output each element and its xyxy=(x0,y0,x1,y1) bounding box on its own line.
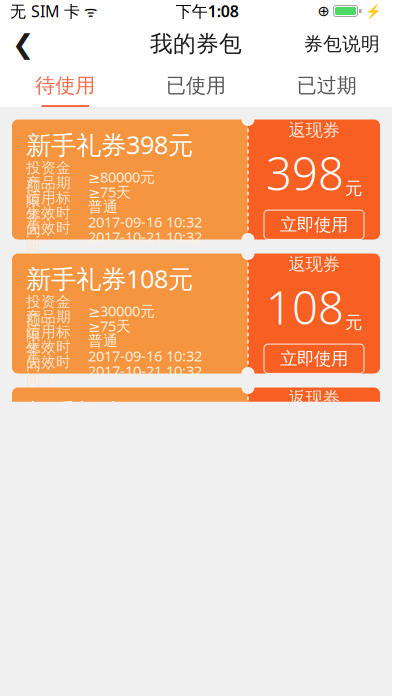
staticText: 2017-09-16 10:32 xyxy=(88,346,202,366)
staticText: 新手礼券398元 xyxy=(26,128,193,161)
staticText: 我的券包 xyxy=(150,30,242,58)
staticText: 普通 xyxy=(88,198,118,216)
button[interactable]: Back xyxy=(0,22,46,66)
staticText: 108 xyxy=(266,277,344,337)
staticText: 投资金额： xyxy=(26,159,71,195)
staticText: 立即使用 xyxy=(280,348,348,369)
staticText: 返现券 xyxy=(288,388,339,409)
staticText: 生效时间： xyxy=(26,204,71,240)
staticText: ≥30000元 xyxy=(88,301,155,321)
staticText: 券包说明 xyxy=(304,32,380,55)
staticText: 产品期限： xyxy=(26,308,71,344)
staticText: ⊕ xyxy=(317,3,329,19)
staticText: ≥80000元 xyxy=(88,167,155,187)
staticText: 失效时间： xyxy=(26,219,71,255)
staticText: 投资金额： xyxy=(26,293,71,329)
staticText: 新手礼券88元 xyxy=(26,396,179,429)
staticText: ⚡ xyxy=(365,3,382,19)
staticText: ❮ xyxy=(12,29,34,59)
button[interactable]: 已使用 xyxy=(131,66,261,107)
staticText: 下午1:08 xyxy=(176,0,239,22)
staticText: 失效时间： xyxy=(26,353,71,389)
staticText: 2017-09-16 10:32 xyxy=(88,212,202,232)
staticText: ≥75天 xyxy=(88,316,131,336)
staticText: 适用标签： xyxy=(26,323,71,359)
staticText: 元 xyxy=(345,312,362,333)
staticText: 普通 xyxy=(88,332,118,350)
button[interactable]: 待使用 xyxy=(0,66,131,107)
staticText: 2017-10-21 10:32 xyxy=(88,227,202,247)
staticText: 398 xyxy=(266,143,344,203)
staticText: 新手礼券108元 xyxy=(26,262,193,295)
button[interactable]: 新手礼券108元 xyxy=(12,253,380,373)
staticText: 返现券 xyxy=(288,120,339,141)
button[interactable]: 已过期 xyxy=(261,66,392,107)
staticText: 无 SIM 卡 xyxy=(10,0,80,22)
staticText: 适用标签： xyxy=(26,189,71,225)
staticText: 元 xyxy=(345,178,362,199)
staticText: ≥75天 xyxy=(88,182,131,202)
staticText: ᯤ xyxy=(80,1,97,21)
staticText: 产品期限： xyxy=(26,174,71,210)
staticText: 已过期 xyxy=(297,73,357,98)
staticText: 生效时间： xyxy=(26,338,71,374)
staticText: 待使用 xyxy=(35,73,95,98)
button[interactable]: 新手礼券88元 xyxy=(12,387,380,507)
staticText: 返现券 xyxy=(288,254,339,275)
button[interactable]: 新手礼券398元 xyxy=(12,119,380,239)
button[interactable]: 券包说明 xyxy=(292,22,392,66)
staticText: 立即使用 xyxy=(280,214,348,235)
staticText: 2017-10-21 10:32 xyxy=(88,361,202,381)
staticText: 已使用 xyxy=(166,73,226,98)
